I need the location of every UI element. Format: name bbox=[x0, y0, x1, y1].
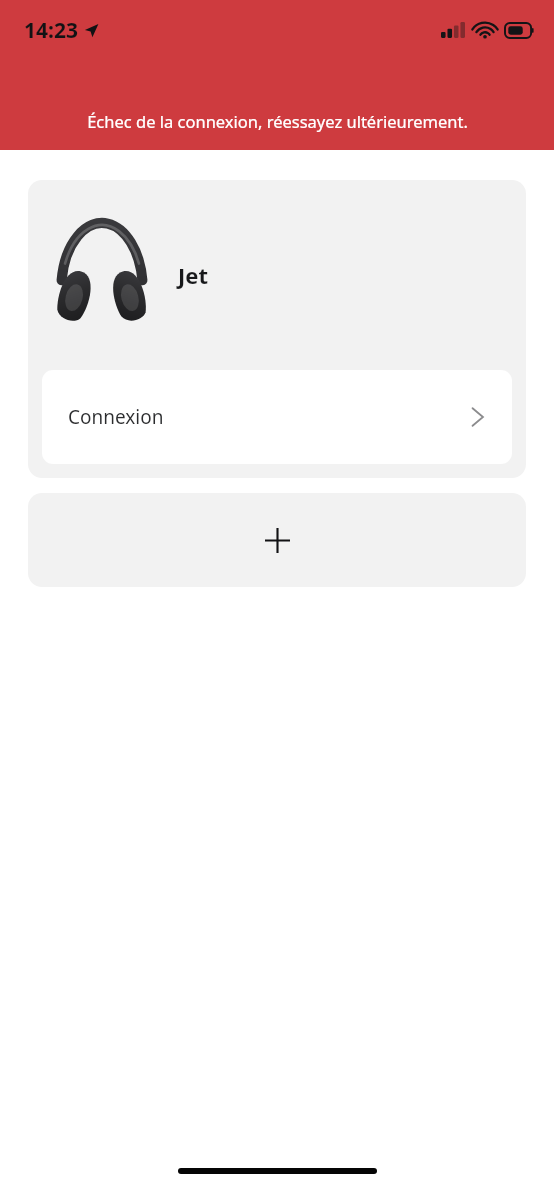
button[interactable]: Add device bbox=[28, 493, 526, 587]
staticText: 14:23 bbox=[24, 16, 78, 45]
staticText: Jet bbox=[178, 260, 208, 290]
staticText: Connexion bbox=[68, 404, 164, 430]
button[interactable]: Connexion bbox=[42, 370, 512, 464]
staticText: Échec de la connexion, réessayez ultérie… bbox=[87, 110, 468, 132]
